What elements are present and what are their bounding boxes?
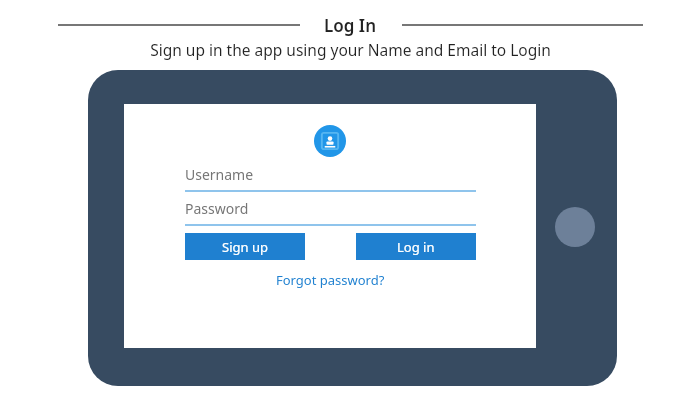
button[interactable]: Home — [555, 207, 595, 247]
staticText: Password — [185, 199, 249, 218]
staticText: Log In — [324, 14, 376, 36]
button[interactable]: Password — [185, 199, 476, 226]
button[interactable]: Forgot password? — [270, 270, 390, 290]
staticText: Username — [185, 165, 254, 184]
staticText: Log in — [397, 238, 435, 256]
button[interactable]: Sign up — [185, 233, 305, 260]
staticText: Forgot password? — [276, 271, 385, 289]
staticText: Sign up in the app using your Name and E… — [150, 39, 551, 60]
staticText: Sign up — [222, 238, 268, 256]
button[interactable]: Log in — [356, 233, 476, 260]
button[interactable]: Username — [185, 165, 476, 192]
button[interactable]: Profile — [314, 125, 346, 157]
